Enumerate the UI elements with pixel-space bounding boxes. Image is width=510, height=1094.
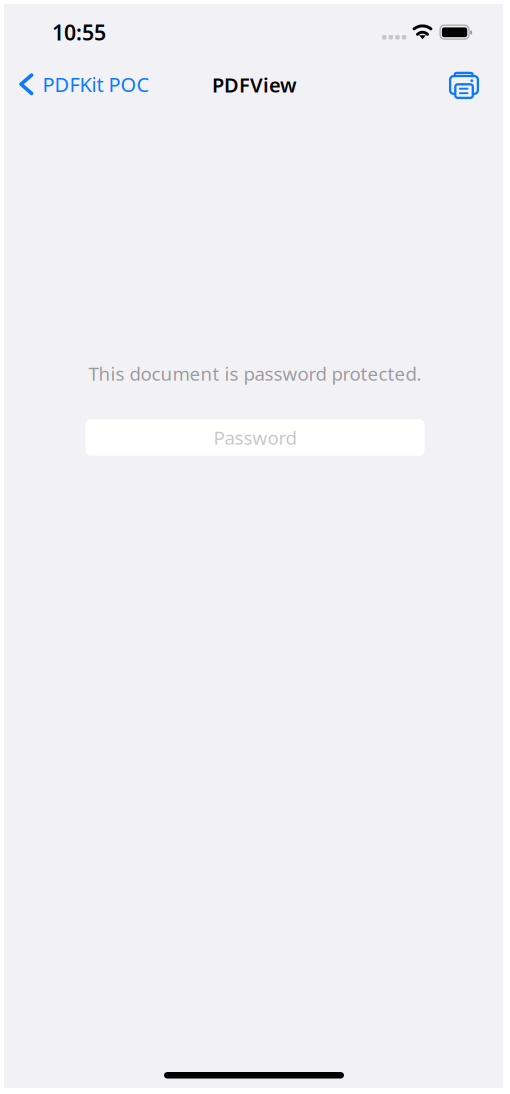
- button[interactable]: Password: [85, 419, 424, 456]
- staticText: This document is password protected.: [88, 361, 421, 386]
- button[interactable]: PDFKit POC: [4, 58, 160, 111]
- staticText: Password: [213, 425, 296, 450]
- staticText: 10:55: [52, 18, 106, 46]
- staticText: PDFKit POC: [43, 71, 150, 98]
- staticText: PDFView: [212, 71, 297, 98]
- button[interactable]: Print: [438, 59, 499, 110]
